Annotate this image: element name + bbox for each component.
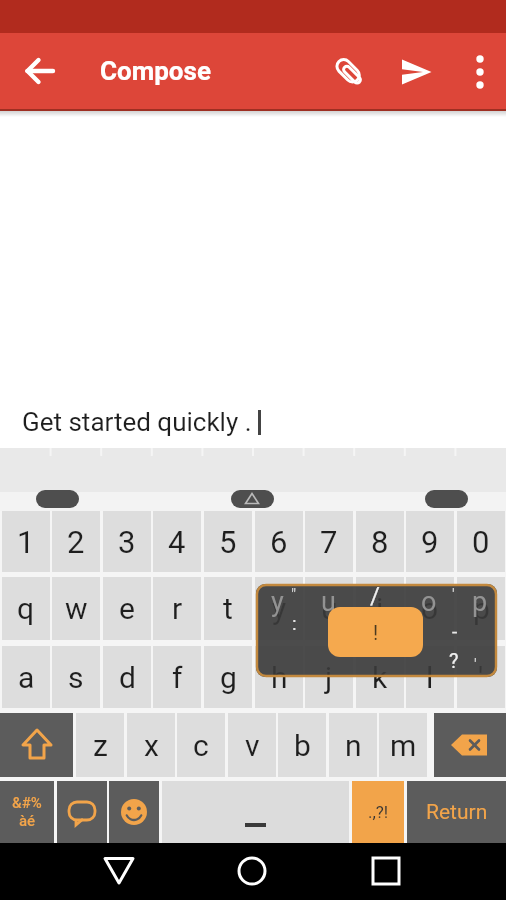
button[interactable]: g (204, 646, 252, 708)
button[interactable]: 2 (52, 511, 100, 572)
button[interactable]: 8 (356, 511, 404, 572)
button[interactable]: 0 (457, 511, 505, 572)
button[interactable]: m (379, 713, 427, 777)
staticText: : (292, 612, 297, 634)
staticText: 5 (219, 524, 237, 560)
button[interactable]: x (127, 713, 175, 777)
button[interactable]: b (278, 713, 326, 777)
button[interactable]: j (305, 646, 353, 708)
button[interactable] (16, 47, 64, 95)
button[interactable] (0, 713, 73, 777)
button[interactable]: .,?! (352, 781, 404, 843)
staticText: ' (474, 655, 477, 674)
staticText: q (17, 591, 35, 626)
staticText: p (473, 591, 490, 626)
button[interactable]: ' (457, 646, 505, 708)
staticText: Get started quickly . (22, 407, 252, 437)
button[interactable]: 1 (2, 511, 50, 572)
staticText: x (144, 728, 159, 763)
staticText: 1 (17, 524, 35, 560)
button[interactable]: 4 (153, 511, 201, 572)
staticText: 3 (118, 524, 136, 560)
button[interactable]: 9 (406, 511, 454, 572)
button[interactable]: u (305, 577, 353, 640)
staticText: y (271, 586, 284, 618)
button[interactable] (394, 49, 438, 95)
button[interactable]: s (52, 646, 100, 708)
button[interactable] (95, 847, 143, 895)
button[interactable]: p (457, 577, 505, 640)
staticText: j (325, 660, 333, 695)
staticText: s (68, 660, 84, 695)
button[interactable]: o (406, 577, 454, 640)
button[interactable]: r (153, 577, 201, 640)
staticText: h (271, 660, 288, 695)
staticText: i (376, 591, 384, 626)
button[interactable] (454, 49, 498, 95)
staticText: " (291, 585, 297, 604)
button[interactable]: d (103, 646, 151, 708)
staticText: 4 (168, 524, 186, 560)
button[interactable]: k (356, 646, 404, 708)
button[interactable]: &#% àé (0, 781, 54, 843)
staticText: n (345, 728, 362, 763)
staticText: p (472, 586, 488, 618)
button[interactable]: e (103, 577, 151, 640)
button[interactable]: ! (328, 607, 423, 657)
button[interactable] (36, 490, 79, 508)
staticText: &#% àé (12, 794, 42, 830)
staticText: Return (426, 800, 488, 825)
button[interactable]: 7 (305, 511, 353, 572)
button[interactable]: 5 (204, 511, 252, 572)
button[interactable] (57, 781, 107, 843)
button[interactable]: y (255, 577, 303, 640)
button[interactable]: n (329, 713, 377, 777)
staticText: a (18, 660, 35, 695)
staticText: 6 (270, 524, 288, 560)
staticText: o (421, 591, 439, 626)
button[interactable]: l (406, 646, 454, 708)
button[interactable] (327, 49, 371, 95)
staticText: .,?! (368, 802, 389, 822)
staticText: z (93, 728, 108, 763)
button[interactable] (425, 490, 468, 508)
button[interactable]: z (76, 713, 124, 777)
button[interactable] (231, 490, 274, 508)
staticText: b (294, 728, 311, 763)
button[interactable]: c (177, 713, 225, 777)
button[interactable]: v (228, 713, 276, 777)
button[interactable]: 3 (103, 511, 151, 572)
button[interactable]: a (2, 646, 50, 708)
staticText: m (390, 728, 417, 763)
staticText: - (452, 620, 458, 642)
staticText: g (220, 660, 237, 695)
staticText: 8 (371, 524, 389, 560)
staticText: 9 (421, 524, 439, 560)
staticText: u (321, 591, 338, 626)
staticText: y (272, 591, 287, 626)
staticText: l (426, 660, 434, 695)
button[interactable]: f (153, 646, 201, 708)
button[interactable] (109, 781, 159, 843)
staticText: o (421, 586, 437, 618)
staticText: f (172, 660, 183, 695)
button[interactable]: 6 (255, 511, 303, 572)
button[interactable]: t (204, 577, 252, 640)
button[interactable]: w (52, 577, 100, 640)
staticText: 0 (472, 524, 490, 560)
button[interactable]: i (356, 577, 404, 640)
staticText: 2 (67, 524, 85, 560)
button[interactable]: h (255, 646, 303, 708)
staticText: v (245, 728, 260, 763)
button[interactable] (162, 781, 349, 843)
button[interactable]: Return (407, 781, 506, 843)
button[interactable] (228, 847, 276, 895)
button[interactable]: q (2, 577, 50, 640)
staticText: u (321, 586, 336, 618)
staticText: k (372, 660, 388, 695)
button[interactable] (434, 713, 506, 777)
staticText: ' (478, 660, 484, 695)
button[interactable] (362, 847, 410, 895)
staticText: / (370, 582, 380, 610)
staticText: t (223, 591, 233, 626)
